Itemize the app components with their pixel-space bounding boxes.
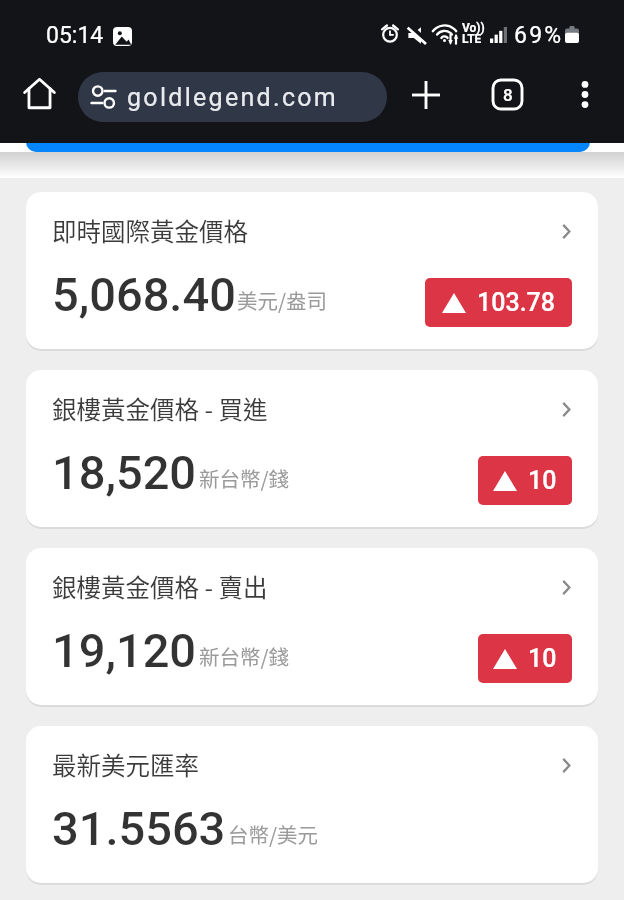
button[interactable]: More options [559, 69, 610, 120]
staticText: 8 [503, 85, 513, 105]
button[interactable]: Home [13, 67, 65, 119]
button[interactable]: 10 [478, 456, 572, 505]
button[interactable]: 10 [478, 634, 572, 683]
staticText: 銀樓黃金價格 - 賣出 [52, 569, 268, 604]
staticText: 銀樓黃金價格 - 買進 [52, 391, 268, 426]
button[interactable]: 最新美元匯率 [26, 726, 598, 883]
button[interactable]: 即時國際黃金價格 [26, 192, 598, 349]
staticText: 69% [514, 22, 564, 49]
staticText: 18,520 [52, 445, 197, 500]
button[interactable]: New tab [400, 69, 451, 120]
staticText: 最新美元匯率 [52, 747, 199, 782]
staticText: goldlegend.com [127, 83, 339, 112]
staticText: Vo)) [462, 21, 485, 35]
button[interactable]: 103.78 [425, 278, 572, 327]
staticText: 10 [528, 466, 557, 495]
staticText: 103.78 [477, 288, 555, 317]
staticText: 即時國際黃金價格 [52, 213, 248, 248]
staticText: 19,120 [52, 623, 197, 678]
staticText: 新台幣/錢 [199, 641, 290, 671]
staticText: LTE [462, 32, 482, 46]
staticText: 台幣/美元 [228, 819, 319, 849]
staticText: 10 [528, 644, 557, 673]
button[interactable]: Tabs [482, 69, 533, 120]
button[interactable]: 銀樓黃金價格 - 買進 [26, 370, 598, 527]
button[interactable]: goldlegend.com [78, 72, 387, 122]
staticText: 5,068.40 [52, 267, 236, 322]
staticText: 31.5563 [52, 801, 226, 856]
staticText: 05:14 [46, 22, 104, 49]
button[interactable] [26, 105, 590, 152]
staticText: 新台幣/錢 [199, 463, 290, 493]
staticText: 美元/盎司 [237, 285, 328, 315]
button[interactable]: 銀樓黃金價格 - 賣出 [26, 548, 598, 705]
